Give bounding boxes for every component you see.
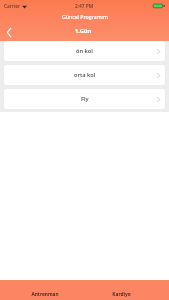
button[interactable]: Back — [1, 23, 16, 41]
staticText: Güncel Programım — [62, 13, 108, 20]
staticText: Carrier — [4, 3, 20, 10]
staticText: Fly — [81, 95, 89, 103]
button[interactable]: Kardiyo — [84, 280, 158, 300]
button[interactable]: Fly — [4, 89, 165, 109]
staticText: Antrenman — [31, 291, 59, 298]
button[interactable]: Antrenman — [8, 280, 82, 300]
staticText: orta kol — [74, 71, 96, 79]
staticText: 2:47 PM — [75, 3, 94, 10]
button[interactable]: orta kol — [4, 65, 165, 85]
staticText: 1.Gün — [75, 27, 92, 35]
staticText: ön kol — [76, 47, 93, 55]
button[interactable]: ön kol — [4, 41, 165, 61]
staticText: Kardiyo — [112, 291, 131, 298]
